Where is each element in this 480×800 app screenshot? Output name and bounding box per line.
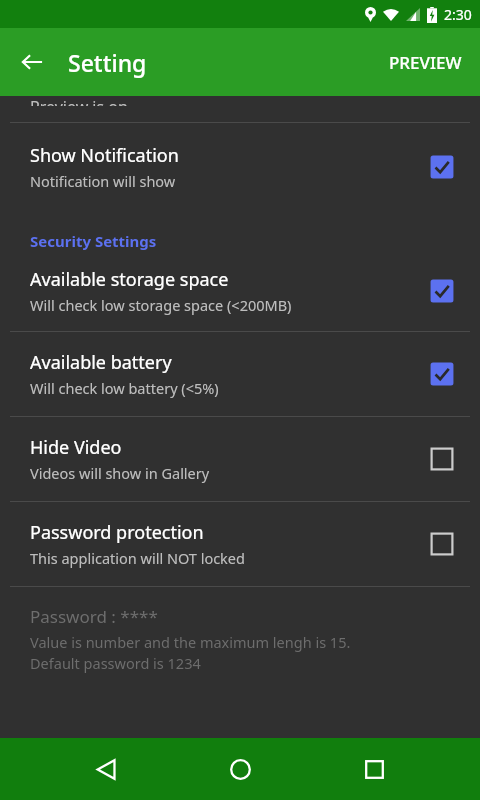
staticText: Setting [68,47,147,78]
button[interactable]: Available battery [0,332,480,416]
button[interactable]: Back [78,741,134,797]
staticText: Preview is on [30,96,128,106]
staticText: Available battery [30,350,172,375]
staticText: Value is number and the maximum lengh is… [30,632,351,652]
staticText: Will check low storage space (<200MB) [30,295,292,315]
button[interactable]: Home [212,741,268,797]
staticText: Password : **** [30,605,158,628]
button[interactable]: Hide Video [0,417,480,501]
button[interactable]: Password protection [0,502,480,586]
staticText: This application will NOT locked [30,548,245,568]
staticText: Videos will show in Gallery [30,463,210,483]
staticText: Will check low battery (<5%) [30,378,219,398]
button[interactable]: Password : **** [0,605,480,673]
staticText: Default password is 1234 [30,653,201,673]
staticText: Available storage space [30,267,229,292]
staticText: Hide Video [30,435,122,460]
button[interactable]: PREVIEW [375,41,476,84]
staticText: Show Notification [30,143,179,168]
staticText: Security Settings [30,231,157,251]
button[interactable]: Recent apps [346,741,402,797]
staticText: Notification will show [30,171,176,191]
staticText: 2:30 [444,5,472,24]
button[interactable]: Back [8,38,56,86]
button[interactable]: Show Notification [0,123,480,213]
button[interactable]: Available storage space [0,267,480,331]
staticText: PREVIEW [389,51,462,74]
staticText: Password protection [30,520,204,545]
